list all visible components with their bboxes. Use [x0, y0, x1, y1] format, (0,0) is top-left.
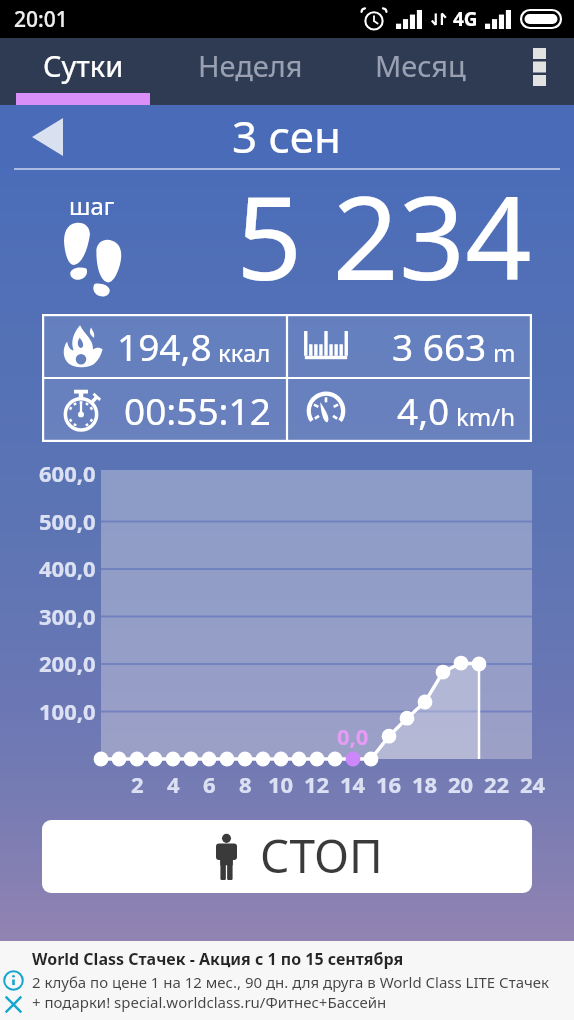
staticText: 300,0 [39, 601, 96, 631]
staticText: m [493, 336, 516, 369]
staticText: + подарки! special.worldclass.ru/Фитнес+… [32, 992, 387, 1012]
staticText: 18 [412, 769, 438, 799]
staticText: 10 [268, 769, 294, 799]
staticText: Неделя [198, 46, 303, 85]
staticText: шаг [69, 189, 115, 222]
staticText: 22 [484, 769, 510, 799]
staticText: 4G [453, 6, 478, 32]
staticText: 8 [239, 769, 252, 799]
staticText: 16 [376, 769, 402, 799]
staticText: 3 663 [392, 321, 487, 371]
staticText: 00:55:12 [124, 385, 271, 435]
button[interactable]: Close ad [0, 991, 27, 1018]
staticText: 500,0 [39, 506, 96, 536]
button[interactable]: Previous day [16, 105, 78, 169]
button[interactable]: Месяц [353, 38, 487, 93]
staticText: 0,0 [337, 721, 369, 751]
staticText: 400,0 [39, 553, 96, 583]
staticText: 100,0 [39, 696, 96, 726]
staticText: СТОП [260, 824, 383, 887]
button[interactable]: Неделя [183, 38, 317, 93]
button[interactable]: 194,8 [42, 314, 287, 378]
staticText: 12 [304, 769, 330, 799]
button[interactable]: 4,0 [287, 378, 532, 442]
button[interactable]: Ad info [0, 967, 27, 994]
staticText: 20:01 [14, 5, 68, 34]
staticText: 4,0 [397, 385, 450, 435]
staticText: 200,0 [39, 648, 96, 678]
staticText: ккал [218, 336, 271, 369]
staticText: 6 [203, 769, 216, 799]
staticText: Месяц [375, 46, 466, 85]
staticText: 194,8 [117, 321, 212, 371]
staticText: 2 [131, 769, 144, 799]
staticText: 14 [340, 769, 366, 799]
button[interactable]: More options [508, 38, 570, 105]
staticText: 5 234 [236, 156, 532, 286]
staticText: Сутки [43, 46, 124, 85]
button[interactable]: 3 663 [287, 314, 532, 378]
staticText: 3 сен [232, 106, 342, 166]
button[interactable]: Сутки [16, 38, 150, 93]
staticText: km/h [456, 400, 516, 433]
staticText: 600,0 [39, 458, 96, 488]
button[interactable]: СТОП [42, 820, 532, 893]
staticText: 20 [448, 769, 474, 799]
staticText: 4 [167, 769, 180, 799]
staticText: World Class Стачек - Акция с 1 по 15 сен… [32, 948, 404, 970]
staticText: 24 [520, 769, 546, 799]
staticText: 2 клуба по цене 1 на 12 мес., 90 дн. для… [32, 972, 550, 992]
button[interactable]: 00:55:12 [42, 378, 287, 442]
